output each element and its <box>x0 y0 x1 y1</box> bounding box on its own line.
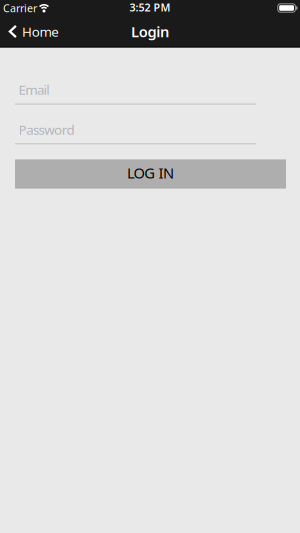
staticText: Password <box>18 121 74 138</box>
staticText: LOG IN <box>127 163 174 183</box>
button[interactable]: LOG IN <box>15 159 286 189</box>
staticText: 3:52 PM <box>129 0 170 14</box>
staticText: Home <box>22 23 59 40</box>
staticText: Carrier <box>3 1 37 15</box>
staticText: Login <box>131 22 169 41</box>
staticText: Email <box>18 81 49 98</box>
button[interactable]: Home <box>0 23 67 40</box>
